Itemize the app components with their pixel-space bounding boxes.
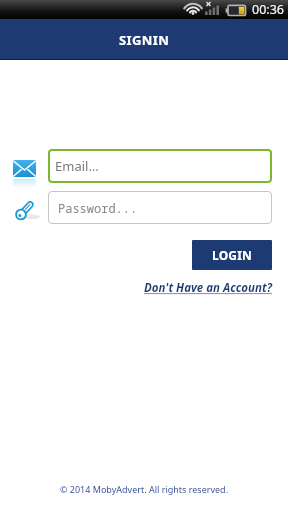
staticText: LOGIN	[212, 247, 253, 263]
staticText: SIGNIN	[119, 31, 170, 49]
button[interactable]: LOGIN	[192, 240, 272, 270]
button[interactable]: Don't Have an Account?	[144, 280, 272, 296]
button[interactable]: Password...	[48, 191, 272, 224]
button[interactable]: Email...	[48, 149, 272, 183]
staticText: 00:36	[252, 1, 284, 18]
staticText: © 2014 MobyAdvert. All rights reserved.	[60, 483, 229, 495]
staticText: Email...	[55, 157, 99, 175]
staticText: Password...	[58, 200, 138, 216]
